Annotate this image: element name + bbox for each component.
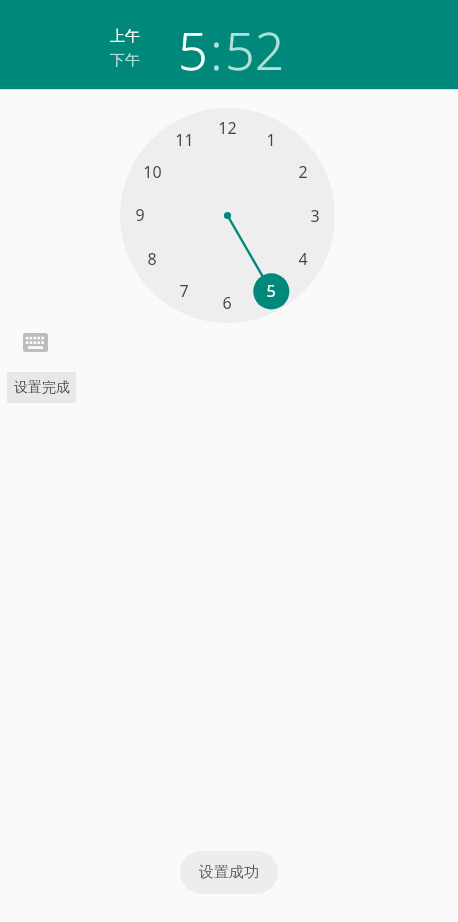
staticText: 3 (310, 205, 320, 227)
staticText: 下午 (110, 51, 140, 70)
staticText: 52 (225, 14, 285, 85)
staticText: 上午 (110, 27, 140, 46)
staticText: 设置成功 (199, 863, 259, 882)
button[interactable]: Switch to text input (18, 329, 52, 355)
staticText: 11 (175, 129, 194, 151)
staticText: 8 (147, 248, 157, 270)
button[interactable]: 上午 (110, 24, 152, 48)
button[interactable]: 12 (120, 108, 335, 323)
button[interactable]: 52 (225, 14, 285, 85)
staticText: 5 (178, 14, 208, 85)
button[interactable]: 下午 (110, 48, 152, 72)
staticText: 4 (298, 248, 308, 270)
button[interactable]: 5 (178, 14, 208, 85)
staticText: 9 (135, 204, 145, 226)
button[interactable]: 设置成功 (180, 851, 278, 894)
staticText: 7 (179, 280, 189, 302)
staticText: 12 (218, 117, 237, 139)
staticText: 5 (266, 280, 276, 302)
staticText: 设置完成 (14, 379, 70, 397)
staticText: 6 (222, 292, 232, 314)
staticText: 10 (143, 161, 162, 183)
staticText: 1 (266, 129, 276, 151)
button[interactable]: 设置完成 (7, 372, 76, 403)
staticText: 2 (298, 161, 308, 183)
staticText: : (210, 14, 223, 85)
